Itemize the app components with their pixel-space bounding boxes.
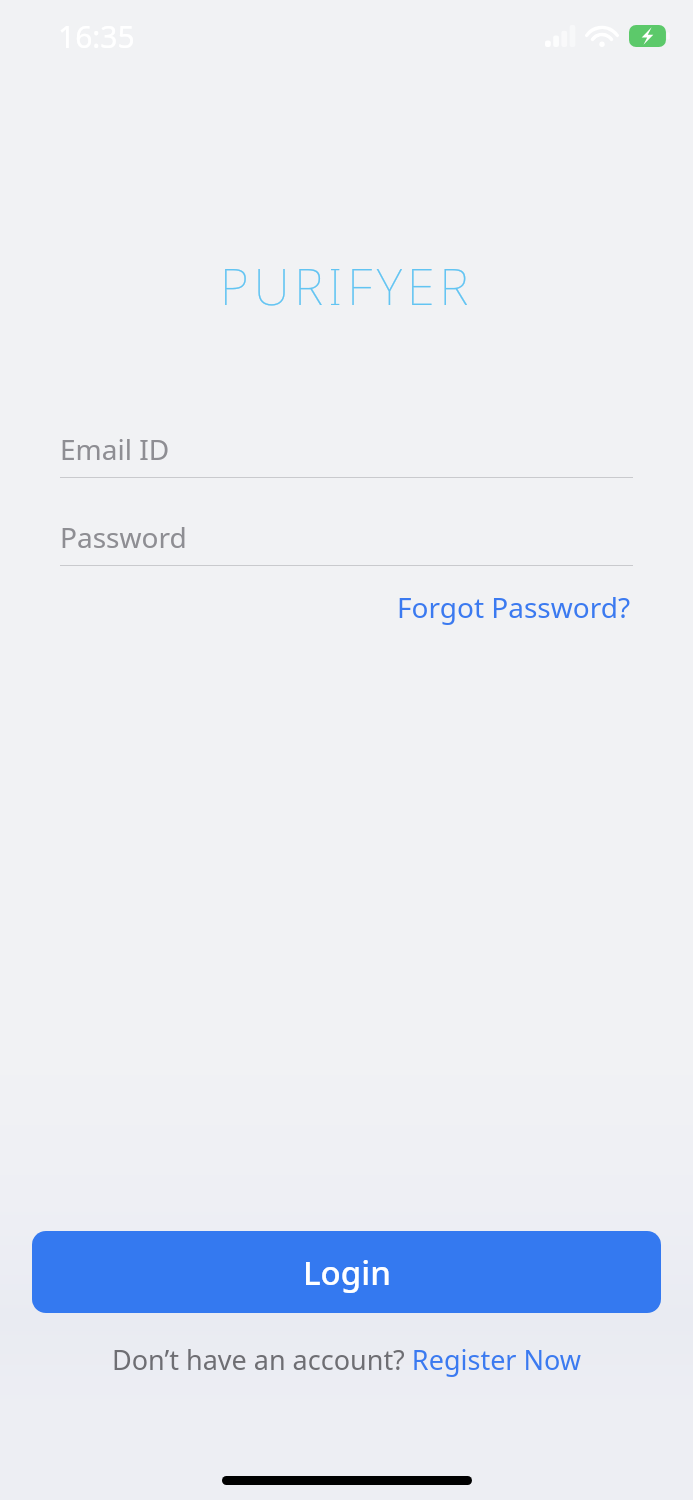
staticText: Login (303, 1250, 391, 1295)
staticText: PURIFYER (220, 252, 474, 320)
staticText: Don’t have an account? Register Now (112, 1341, 582, 1378)
staticText: 16:35 (58, 16, 135, 57)
staticText: Email ID (60, 430, 170, 468)
button[interactable]: Email ID (60, 430, 633, 478)
button[interactable]: Login (32, 1231, 661, 1313)
staticText: Password (60, 518, 187, 556)
button[interactable]: Password (60, 518, 633, 566)
other: Battery charging (629, 25, 671, 47)
button[interactable]: Don’t have an account? Register Now (108, 1337, 586, 1382)
staticText: Forgot Password? (397, 588, 631, 626)
button[interactable]: Forgot Password? (395, 584, 633, 630)
